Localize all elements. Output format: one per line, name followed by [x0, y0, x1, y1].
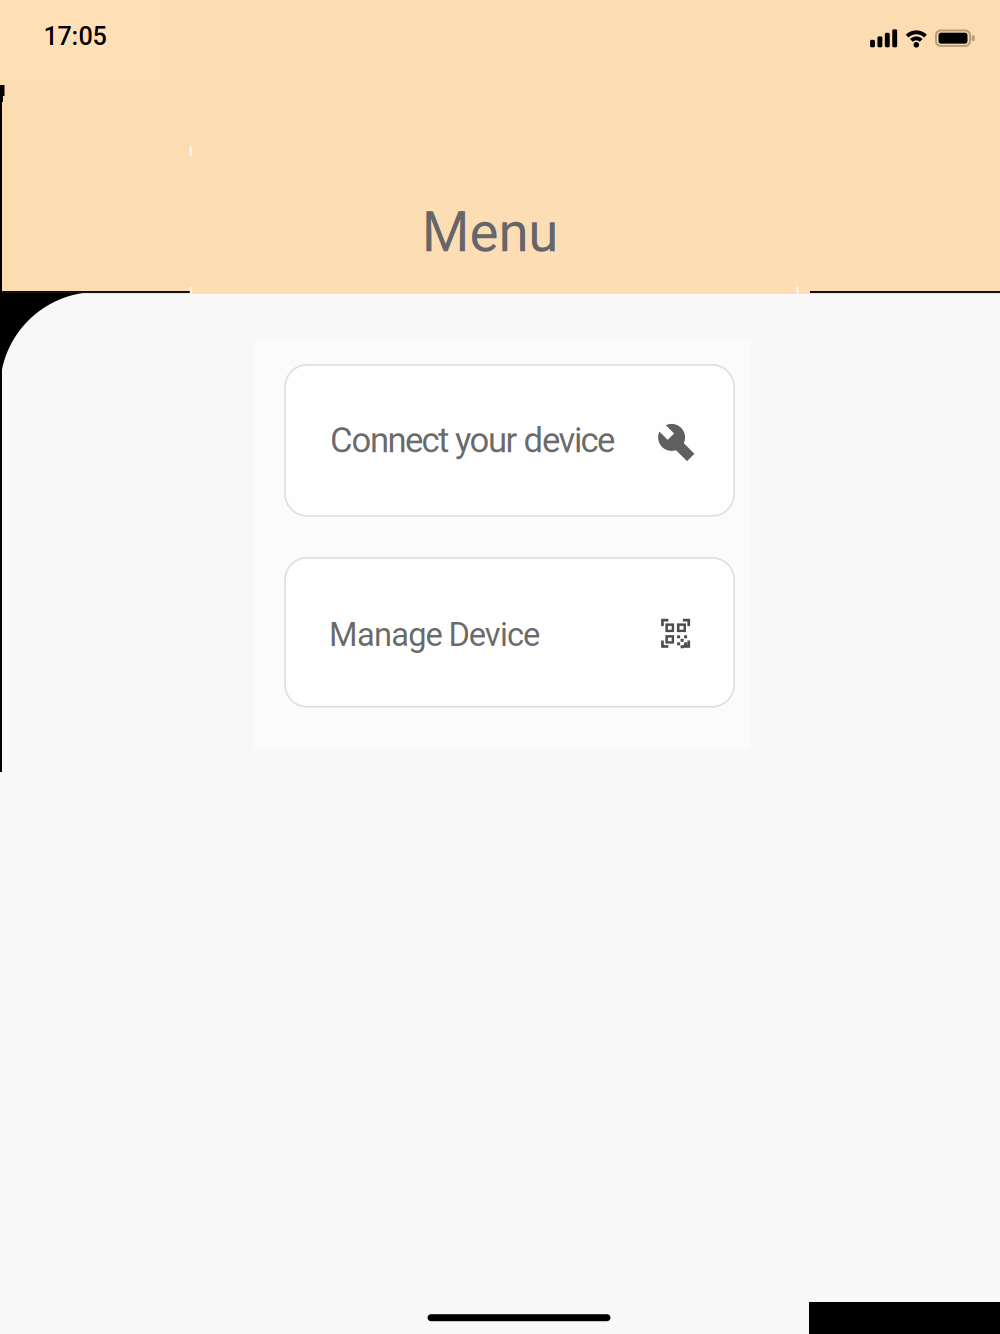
button[interactable]: Manage Device: [285, 558, 734, 707]
button[interactable]: Connect your device: [285, 365, 734, 516]
staticText: Menu: [422, 200, 558, 265]
staticText: Manage Device: [329, 616, 540, 654]
staticText: 17:05: [43, 21, 106, 51]
staticText: Connect your device: [330, 420, 615, 461]
